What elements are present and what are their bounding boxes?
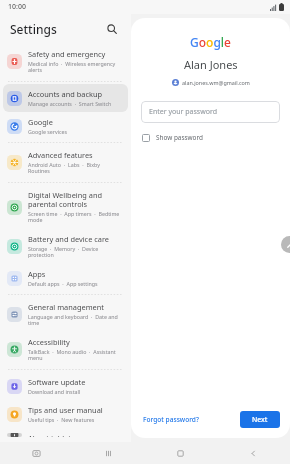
button[interactable]: General management <box>3 297 128 332</box>
button[interactable]: Apps <box>3 264 128 292</box>
staticText: Medical info · Wireless emergency alerts <box>28 60 123 74</box>
staticText: Battery and device care <box>28 234 110 244</box>
staticText: Next <box>252 415 268 424</box>
staticText: Advanced features <box>28 150 93 160</box>
staticText: Forgot password? <box>143 415 199 424</box>
staticText: Accounts and backup <box>28 89 103 99</box>
button[interactable]: Accounts and backup <box>3 84 128 112</box>
staticText: Default apps · App settings <box>28 280 98 287</box>
staticText: 10:00 <box>8 2 26 12</box>
staticText: Enter your password <box>149 107 217 117</box>
staticText: Storage · Memory · Device protection <box>28 245 123 259</box>
staticText: Google <box>28 117 53 127</box>
staticText: alan.jones.wm@gmail.com <box>182 79 250 86</box>
button[interactable]: Next <box>240 411 280 428</box>
button[interactable]: Software update <box>3 372 128 400</box>
button[interactable]: Safety and emergency <box>3 44 128 79</box>
staticText: Show password <box>156 133 203 142</box>
button[interactable]: Advanced features <box>3 145 128 180</box>
button[interactable]: Recent apps <box>0 442 72 464</box>
staticText: Tips and user manual <box>28 405 103 415</box>
staticText: Digital Wellbeing and parental controls <box>28 190 123 209</box>
staticText: Accessibility <box>28 337 70 347</box>
staticText: Language and keyboard · Date and time <box>28 313 123 327</box>
button[interactable]: Home <box>72 442 144 464</box>
staticText: Alan Jones <box>184 57 238 72</box>
staticText: Useful tips · New features <box>28 416 95 423</box>
staticText: Download and install <box>28 388 81 395</box>
staticText: Safety and emergency <box>28 49 106 59</box>
button[interactable]: Search settings <box>103 20 121 38</box>
button[interactable]: alan.jones.wm@gmail.com <box>169 78 253 87</box>
staticText: Screen time · App timers · Bedtime mode <box>28 210 123 224</box>
staticText: Settings <box>10 21 57 37</box>
staticText: About tablet <box>28 433 71 437</box>
button[interactable]: Edit <box>281 236 290 253</box>
staticText: Software update <box>28 377 86 387</box>
staticText: Manage accounts · Smart Switch <box>28 100 112 107</box>
button[interactable]: Accessibility <box>3 332 128 367</box>
button[interactable]: Digital Wellbeing and parental controls <box>3 185 128 229</box>
button[interactable]: Enter your password <box>141 101 280 123</box>
staticText: TalkBack · Mono audio · Assistant menu <box>28 348 123 362</box>
staticText: Android Auto · Labs · Bixby Routines <box>28 161 123 175</box>
button[interactable]: Forgot password? <box>141 412 201 427</box>
staticText: Google <box>190 34 231 50</box>
staticText: General management <box>28 302 104 312</box>
button[interactable]: About tablet <box>3 428 128 442</box>
staticText: Google services <box>28 128 68 135</box>
staticText: Apps <box>28 269 46 279</box>
button[interactable]: Back <box>217 442 290 464</box>
button[interactable]: Battery and device care <box>3 229 128 264</box>
button[interactable]: Google <box>3 112 128 140</box>
button[interactable]: Overview <box>144 442 217 464</box>
button[interactable]: Show password <box>141 131 204 144</box>
button[interactable]: Tips and user manual <box>3 400 128 428</box>
